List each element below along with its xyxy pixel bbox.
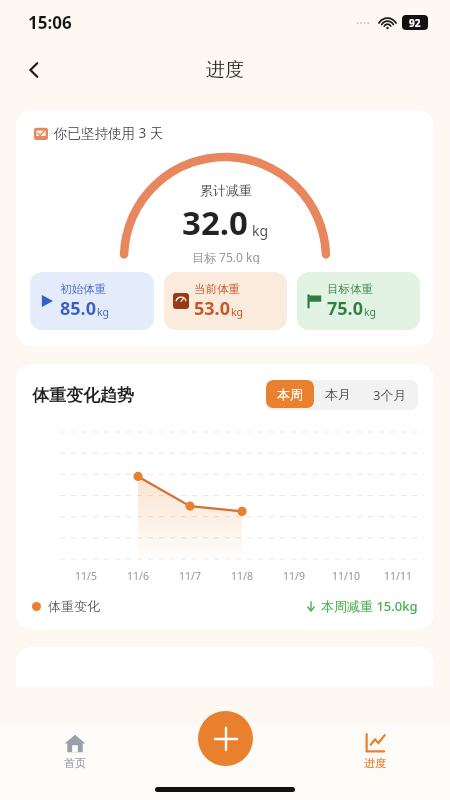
- staticText: 11/9: [268, 569, 320, 583]
- staticText: 11/5: [60, 569, 112, 583]
- staticText: 累计减重: [200, 182, 252, 198]
- staticText: 11/7: [164, 569, 216, 583]
- staticText: kg: [364, 305, 377, 319]
- staticText: 11/10: [320, 569, 372, 583]
- staticText: 11/11: [372, 569, 424, 583]
- staticText: kg: [252, 221, 269, 240]
- button[interactable]: 本周: [266, 380, 314, 408]
- staticText: kg: [97, 305, 110, 319]
- staticText: 32.0: [182, 200, 248, 245]
- staticText: 进度: [206, 58, 244, 82]
- staticText: 75.0: [327, 296, 363, 321]
- staticText: 当前体重: [194, 282, 240, 296]
- staticText: 本月: [325, 386, 351, 402]
- staticText: 3个月: [373, 386, 407, 404]
- staticText: 本周: [277, 386, 303, 402]
- button[interactable]: 当前体重: [164, 272, 287, 330]
- staticText: 体重变化趋势: [32, 385, 134, 406]
- staticText: 首页: [64, 756, 86, 770]
- button[interactable]: 3个月: [362, 380, 418, 410]
- staticText: 15:06: [28, 11, 72, 34]
- staticText: 53.0: [194, 296, 230, 321]
- button[interactable]: 首页: [0, 728, 150, 770]
- button[interactable]: 进度: [300, 728, 450, 770]
- staticText: 本周减重 15.0kg: [321, 597, 418, 615]
- staticText: 体重变化: [48, 598, 100, 614]
- button[interactable]: 初始体重: [30, 272, 154, 330]
- staticText: 初始体重: [60, 282, 106, 296]
- staticText: 目标 75.0 kg: [192, 249, 260, 264]
- staticText: 85.0: [60, 296, 96, 321]
- button[interactable]: Add: [198, 711, 253, 766]
- staticText: 你已坚持使用 3 天: [54, 124, 164, 142]
- staticText: 进度: [364, 756, 386, 770]
- staticText: 92: [409, 16, 421, 30]
- button[interactable]: 目标体重: [297, 272, 420, 330]
- staticText: 11/8: [216, 569, 268, 583]
- staticText: 目标体重: [327, 282, 373, 296]
- staticText: 11/6: [112, 569, 164, 583]
- button[interactable]: Back: [14, 50, 54, 90]
- staticText: kg: [231, 305, 244, 319]
- button[interactable]: 本月: [314, 380, 362, 408]
